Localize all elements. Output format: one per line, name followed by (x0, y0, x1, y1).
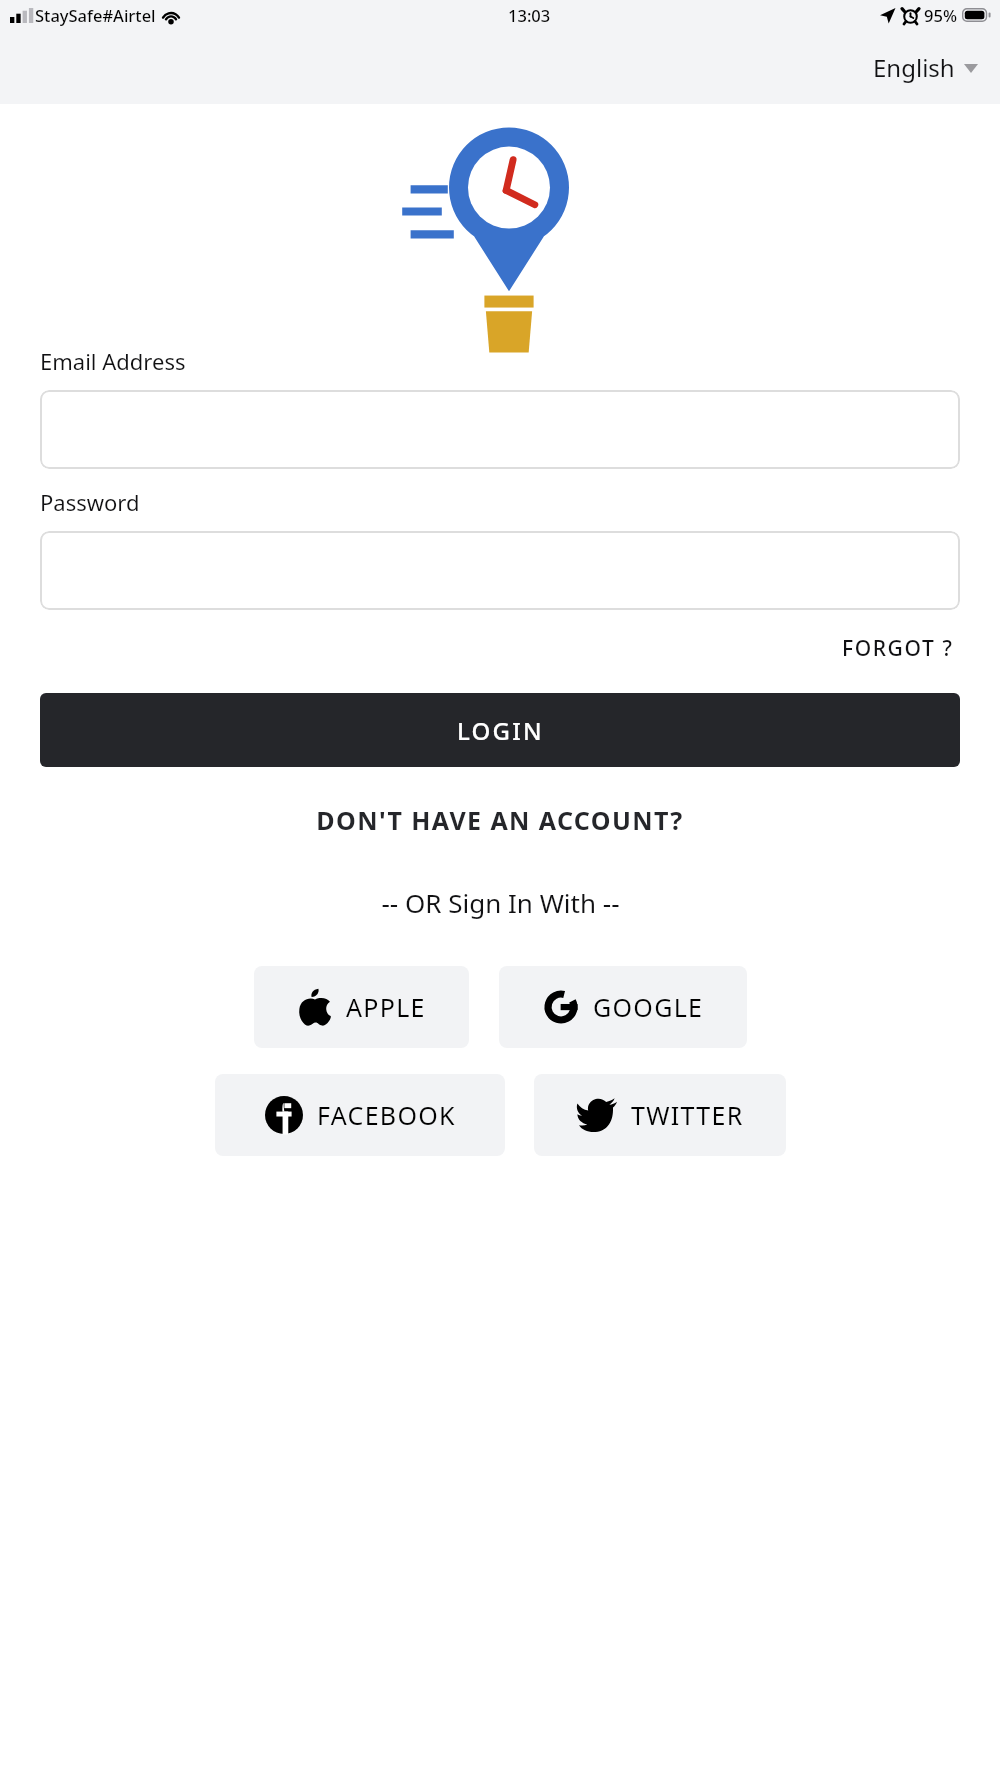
button[interactable] (40, 531, 960, 610)
button[interactable]: LOGIN (40, 693, 960, 767)
button[interactable]: APPLE (254, 966, 469, 1048)
staticText: Password (40, 487, 140, 517)
button[interactable] (40, 390, 960, 469)
button[interactable]: English (867, 45, 984, 90)
button[interactable]: DON'T HAVE AN ACCOUNT? (308, 799, 692, 841)
button[interactable]: FORGOT ? (836, 626, 960, 671)
staticText: English (873, 51, 955, 84)
staticText: FACEBOOK (317, 1098, 456, 1132)
staticText: -- OR Sign In With -- (381, 885, 620, 920)
staticText: FORGOT ? (842, 634, 954, 663)
button[interactable]: GOOGLE (499, 966, 747, 1048)
staticText: Email Address (40, 346, 186, 376)
staticText: LOGIN (457, 714, 544, 747)
button[interactable]: TWITTER (534, 1074, 786, 1156)
staticText: StaySafe#Airtel (35, 4, 156, 26)
button[interactable]: FACEBOOK (215, 1074, 505, 1156)
staticText: GOOGLE (593, 990, 704, 1024)
staticText: APPLE (346, 990, 426, 1024)
staticText: DON'T HAVE AN ACCOUNT? (316, 803, 684, 837)
staticText: 13:03 (508, 4, 551, 26)
staticText: 95% (924, 4, 957, 26)
staticText: TWITTER (631, 1098, 744, 1132)
